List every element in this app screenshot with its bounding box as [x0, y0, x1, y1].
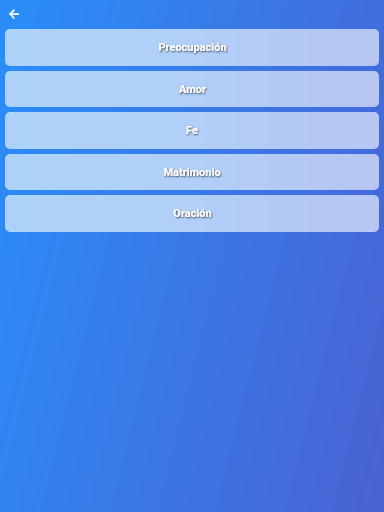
button[interactable]: Preocupación	[5, 29, 379, 66]
staticText: Fe	[186, 124, 198, 137]
button[interactable]: Oración	[5, 195, 379, 232]
staticText: Oración	[173, 207, 212, 220]
button[interactable]: Amor	[5, 71, 379, 107]
staticText: Preocupación	[158, 41, 227, 54]
button[interactable]: Fe	[5, 112, 379, 149]
button[interactable]: Back	[3, 3, 25, 25]
staticText: Amor	[179, 83, 206, 96]
button[interactable]: Matrimonio	[5, 154, 379, 190]
staticText: Matrimonio	[163, 166, 221, 179]
